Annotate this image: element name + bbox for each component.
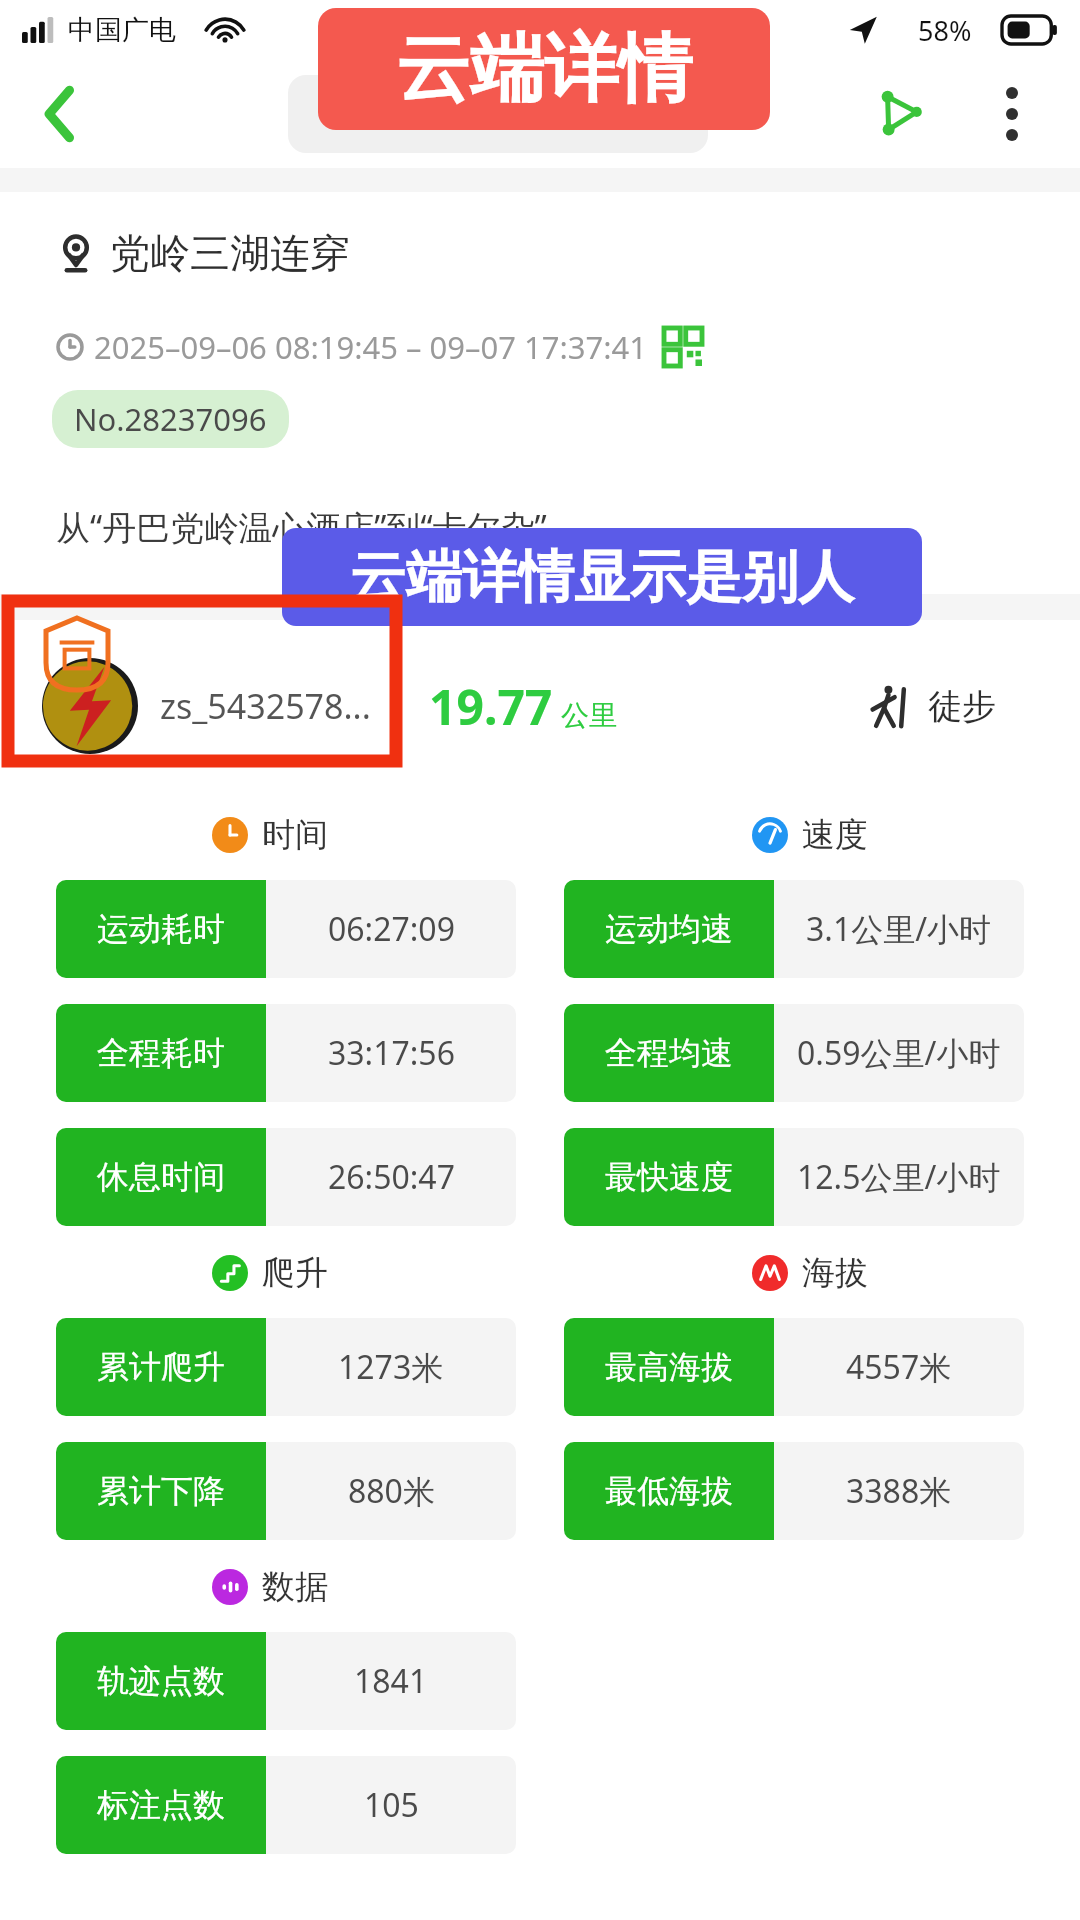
button[interactable]: 地图 [288, 75, 708, 153]
staticText: 最快速度 [605, 1157, 733, 1197]
staticText: 累计爬升 [97, 1347, 225, 1387]
button[interactable]: 二维码 [664, 328, 702, 366]
button[interactable]: 最高海拔 [564, 1318, 1024, 1416]
staticText: 云端详情 [396, 23, 692, 116]
staticText: 58% [918, 12, 972, 49]
button[interactable]: 标注点数 [56, 1756, 516, 1854]
button[interactable]: 全程均速 [564, 1004, 1024, 1102]
staticText: 12.5公里/小时 [797, 1155, 1001, 1199]
staticText: 休息时间 [97, 1157, 225, 1197]
staticText: 3.1公里/小时 [806, 907, 992, 951]
staticText: 数据 [262, 1566, 328, 1608]
button[interactable]: 运动耗时 [56, 880, 516, 978]
staticText: 26:50:47 [328, 1155, 455, 1199]
staticText: 105 [364, 1783, 419, 1827]
staticText: 中国广电 [68, 13, 176, 47]
staticText: 时间 [262, 814, 328, 856]
button[interactable]: 休息时间 [56, 1128, 516, 1226]
button[interactable]: 累计爬升 [56, 1318, 516, 1416]
staticText: 0.59公里/小时 [797, 1031, 1001, 1075]
button[interactable]: 轨迹点数 [56, 1632, 516, 1730]
staticText: 地图 [344, 95, 404, 133]
button[interactable]: 党岭三湖连穿 [56, 228, 1080, 278]
button[interactable]: 分享 [856, 72, 940, 156]
staticText: 海拔 [802, 1252, 868, 1294]
staticText: 从“丹巴党岭温心酒店”到“卡尔杂” [56, 504, 547, 550]
staticText: 33:17:56 [328, 1031, 455, 1075]
staticText: 运动均速 [605, 909, 733, 949]
button[interactable]: 累计下降 [56, 1442, 516, 1540]
staticText: No.28237096 [74, 398, 267, 440]
staticText: 标注点数 [97, 1785, 225, 1825]
staticText: 3388米 [846, 1469, 952, 1513]
staticText: 880米 [348, 1469, 435, 1513]
button[interactable]: 返回 [20, 74, 100, 154]
staticText: 19.77 [429, 674, 553, 739]
staticText: 累计下降 [97, 1471, 225, 1511]
staticText: 速度 [802, 814, 868, 856]
staticText: 1841 [354, 1659, 428, 1703]
staticText: 全程耗时 [97, 1033, 225, 1073]
staticText: 最高海拔 [605, 1347, 733, 1387]
button[interactable]: 运动均速 [564, 880, 1024, 978]
button[interactable]: 最低海拔 [564, 1442, 1024, 1540]
staticText: 06:27:09 [328, 907, 455, 951]
button[interactable]: zs_5432578... [0, 620, 1080, 792]
button[interactable]: 全程耗时 [56, 1004, 516, 1102]
staticText: 党岭三湖连穿 [110, 228, 350, 278]
staticText: 运动耗时 [97, 909, 225, 949]
staticText: 徒步 [928, 685, 996, 728]
staticText: 1273米 [338, 1345, 444, 1389]
staticText: 2025–09–06 08:19:45 – 09–07 17:37:41 [94, 326, 648, 368]
staticText: 4557米 [846, 1345, 952, 1389]
button[interactable]: 更多 [972, 74, 1052, 154]
button[interactable]: No.28237096 [52, 390, 289, 448]
staticText: 全程均速 [605, 1033, 733, 1073]
button[interactable]: 最快速度 [564, 1128, 1024, 1226]
staticText: zs_5432578... [160, 683, 371, 729]
staticText: 最低海拔 [605, 1471, 733, 1511]
staticText: 公里 [561, 698, 617, 733]
staticText: 爬升 [262, 1252, 328, 1294]
staticText: 云端详情显示是别人 [350, 542, 854, 613]
staticText: 轨迹点数 [97, 1661, 225, 1701]
